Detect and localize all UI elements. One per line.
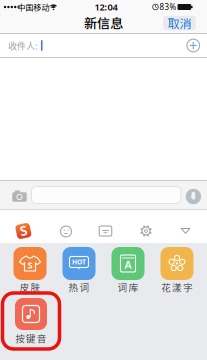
staticText: 新信息	[84, 13, 123, 32]
staticText: 花漾字	[161, 280, 193, 294]
button[interactable]: Sogou	[15, 222, 32, 239]
staticText: 词库	[118, 280, 138, 294]
staticText: 12:04	[94, 1, 117, 13]
button[interactable]: Add Contact	[186, 39, 200, 52]
staticText: 中国移动	[17, 1, 49, 13]
button[interactable]: Camera	[11, 190, 27, 203]
button[interactable]: 按键音	[15, 298, 47, 330]
staticText: 83%	[159, 2, 176, 12]
button[interactable]: 词库	[111, 247, 144, 280]
staticText: 热词	[69, 280, 89, 294]
staticText: A	[124, 257, 131, 272]
button[interactable]: 皮肤	[13, 247, 46, 280]
button[interactable]: 热词	[62, 247, 95, 280]
staticText: 取消	[167, 14, 191, 32]
button[interactable]: Clipboard	[99, 225, 112, 236]
staticText: 按键音	[15, 331, 47, 345]
button[interactable]: 花漾字	[160, 247, 193, 280]
staticText: S	[27, 259, 32, 271]
button[interactable]: Hide Keyboard	[180, 227, 190, 234]
button[interactable]: 取消	[163, 16, 196, 30]
staticText: 皮肤	[20, 280, 40, 294]
button[interactable]: Emoji	[60, 225, 72, 237]
button[interactable]: Settings	[139, 224, 152, 237]
staticText: 收件人:	[8, 39, 38, 52]
staticText: S	[20, 222, 27, 239]
button[interactable]: Record Audio	[186, 189, 201, 204]
staticText: HOT	[72, 258, 86, 266]
